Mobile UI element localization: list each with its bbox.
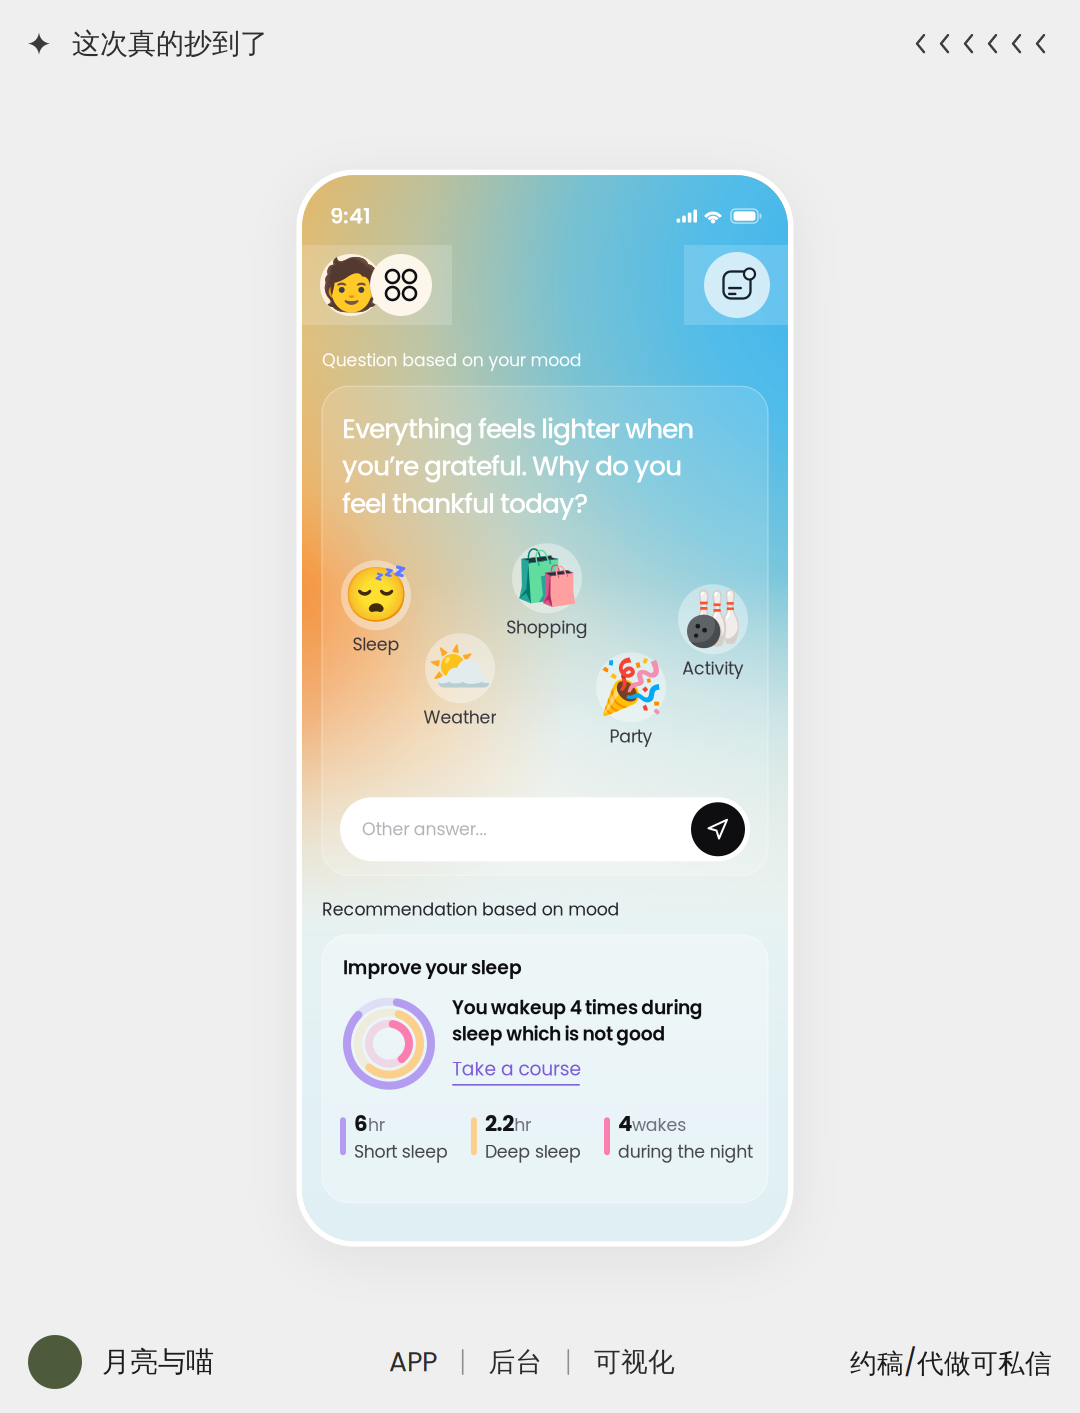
staticText: Everything feels lighter when you’re gra…: [342, 410, 694, 522]
staticText: Question based on your mood: [322, 348, 582, 372]
staticText: ⛅: [427, 637, 493, 699]
button[interactable]: 可视化: [594, 1345, 675, 1379]
staticText: Sleep: [352, 632, 400, 657]
button[interactable]: 后台: [488, 1345, 542, 1379]
button[interactable]: Profile: [320, 254, 382, 316]
staticText: 🛍️: [514, 547, 580, 609]
button[interactable]: Apps: [370, 254, 432, 316]
staticText: 约稿/代做可私信: [850, 1343, 1052, 1381]
staticText: hr: [368, 1113, 385, 1137]
staticText: APP: [389, 1343, 437, 1381]
button[interactable]: Take a course: [452, 1056, 582, 1085]
button[interactable]: 🎉: [596, 652, 666, 749]
staticText: Party: [609, 724, 653, 749]
button[interactable]: APP: [389, 1343, 437, 1381]
staticText: Short sleep: [354, 1139, 448, 1164]
staticText: Take a course: [452, 1056, 582, 1082]
staticText: You wakeup 4 times during sleep which is…: [452, 995, 703, 1047]
staticText: Weather: [424, 705, 496, 730]
staticText: 可视化: [594, 1345, 675, 1379]
staticText: 😴: [343, 564, 409, 626]
staticText: 月亮与喵: [102, 1344, 214, 1380]
staticText: 2.2: [485, 1109, 514, 1139]
staticText: 后台: [488, 1345, 542, 1379]
button[interactable]: Notifications: [704, 252, 770, 318]
staticText: Recommendation based on mood: [322, 897, 620, 922]
staticText: during the night: [618, 1139, 753, 1164]
staticText: 这次真的抄到了: [72, 26, 268, 61]
staticText: Shopping: [506, 615, 588, 640]
staticText: hr: [514, 1113, 531, 1137]
staticText: Improve your sleep: [343, 954, 522, 981]
staticText: 🧑: [319, 255, 382, 315]
staticText: 4: [618, 1109, 632, 1139]
button[interactable]: 😴: [341, 560, 411, 657]
staticText: 🎉: [598, 656, 664, 718]
staticText: 9:41: [330, 201, 371, 231]
staticText: Activity: [682, 656, 744, 681]
button[interactable]: 🎳: [678, 584, 748, 681]
staticText: Deep sleep: [485, 1139, 581, 1164]
staticText: wakes: [632, 1113, 686, 1137]
staticText: 6: [354, 1109, 368, 1139]
button[interactable]: 🛍️: [506, 543, 588, 640]
staticText: 🎳: [680, 588, 746, 650]
button[interactable]: Send: [691, 802, 745, 856]
staticText: Other answer...: [362, 817, 487, 841]
button[interactable]: ⛅: [424, 633, 496, 730]
